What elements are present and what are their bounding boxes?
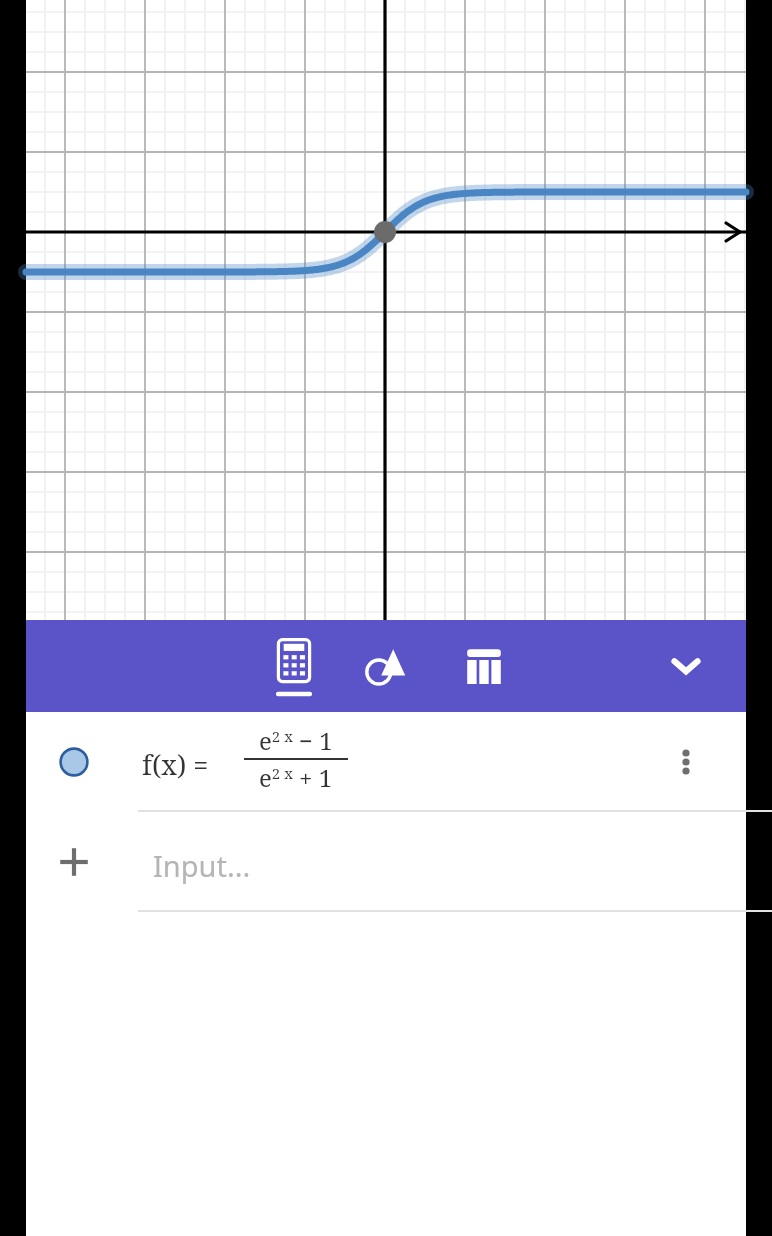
staticText: e2 x − 1	[259, 724, 333, 757]
button[interactable]: Toggle visibility	[26, 712, 746, 812]
button[interactable]: Toggle visibility	[59, 747, 89, 777]
staticText: f(x) =	[142, 746, 209, 783]
button[interactable]: Geometry	[356, 636, 416, 696]
button[interactable]: More options	[662, 738, 710, 786]
button[interactable]: Calculator	[264, 636, 324, 696]
staticText: Input...	[153, 846, 251, 885]
button[interactable]: Table	[454, 636, 514, 696]
button[interactable]: Collapse	[658, 638, 714, 694]
button[interactable]: Add expression	[26, 812, 746, 912]
staticText: e2 x + 1	[259, 761, 333, 794]
button[interactable]: Add expression	[59, 847, 89, 877]
